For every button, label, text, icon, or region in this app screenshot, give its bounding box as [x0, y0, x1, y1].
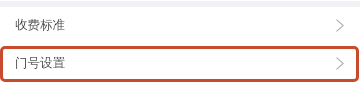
button[interactable]: 门号设置 [0, 46, 359, 82]
button[interactable]: 收费标准 [0, 6, 360, 43]
staticText: 收费标准 [15, 17, 65, 33]
other: Open 门号设置 [336, 57, 344, 70]
other: Open 收费标准 [336, 19, 344, 32]
staticText: 门号设置 [15, 55, 65, 71]
